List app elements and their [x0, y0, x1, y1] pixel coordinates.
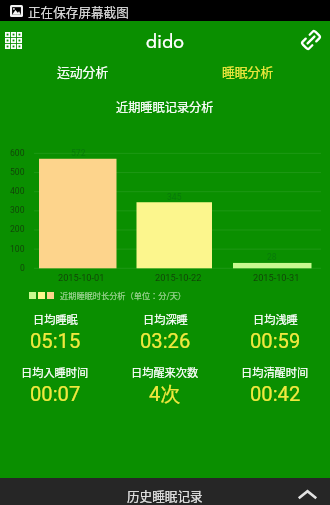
staticText: 100 — [10, 244, 25, 254]
staticText: 500 — [10, 167, 25, 177]
button[interactable]: Menu — [0, 25, 28, 55]
staticText: 0 — [20, 263, 25, 273]
staticText: 近期睡眠时长分析（单位：分/天） — [60, 289, 187, 301]
staticText: 03:26 — [140, 329, 191, 353]
button[interactable]: Share link — [296, 25, 326, 55]
staticText: 日均浅睡 — [253, 311, 298, 327]
staticText: 日均醒来次数 — [131, 364, 199, 380]
staticText: 运动分析 — [57, 62, 109, 81]
other: Expand history — [298, 489, 317, 499]
staticText: 300 — [10, 205, 25, 215]
staticText: 05:15 — [30, 329, 81, 353]
staticText: 00:59 — [250, 329, 301, 353]
staticText: 4次 — [149, 382, 181, 407]
staticText: 日均清醒时间 — [241, 364, 309, 380]
button[interactable]: 历史睡眠记录 — [0, 478, 330, 505]
staticText: 28 — [267, 252, 277, 262]
staticText: 正在保存屏幕截图 — [28, 2, 129, 20]
staticText: 2015-10-31 — [253, 272, 300, 283]
button[interactable]: 运动分析 — [0, 58, 165, 84]
button[interactable]: 日均睡眠 — [0, 311, 110, 351]
staticText: 00:42 — [250, 382, 301, 406]
button[interactable]: 日均浅睡 — [220, 311, 330, 351]
staticText: 600 — [10, 148, 25, 158]
staticText: 历史睡眠记录 — [127, 486, 203, 504]
staticText: 00:07 — [30, 382, 81, 406]
staticText: 572 — [71, 148, 86, 158]
staticText: 日均入睡时间 — [21, 364, 89, 380]
button[interactable]: 日均清醒时间 — [220, 364, 330, 404]
staticText: 345 — [167, 192, 182, 202]
staticText: 200 — [10, 224, 25, 234]
staticText: 日均深睡 — [143, 311, 188, 327]
button[interactable]: 日均入睡时间 — [0, 364, 110, 404]
staticText: 睡眠分析 — [222, 62, 274, 81]
staticText: 近期睡眠记录分析 — [116, 98, 214, 116]
button[interactable]: 日均深睡 — [110, 311, 220, 351]
staticText: 400 — [10, 186, 25, 196]
button[interactable]: 睡眠分析 — [165, 58, 330, 84]
staticText: 2015-10-22 — [155, 272, 202, 283]
staticText: 日均睡眠 — [33, 311, 78, 327]
staticText: dido — [146, 27, 184, 55]
staticText: 2015-10-01 — [58, 272, 105, 283]
button[interactable]: 日均醒来次数 — [110, 364, 220, 404]
